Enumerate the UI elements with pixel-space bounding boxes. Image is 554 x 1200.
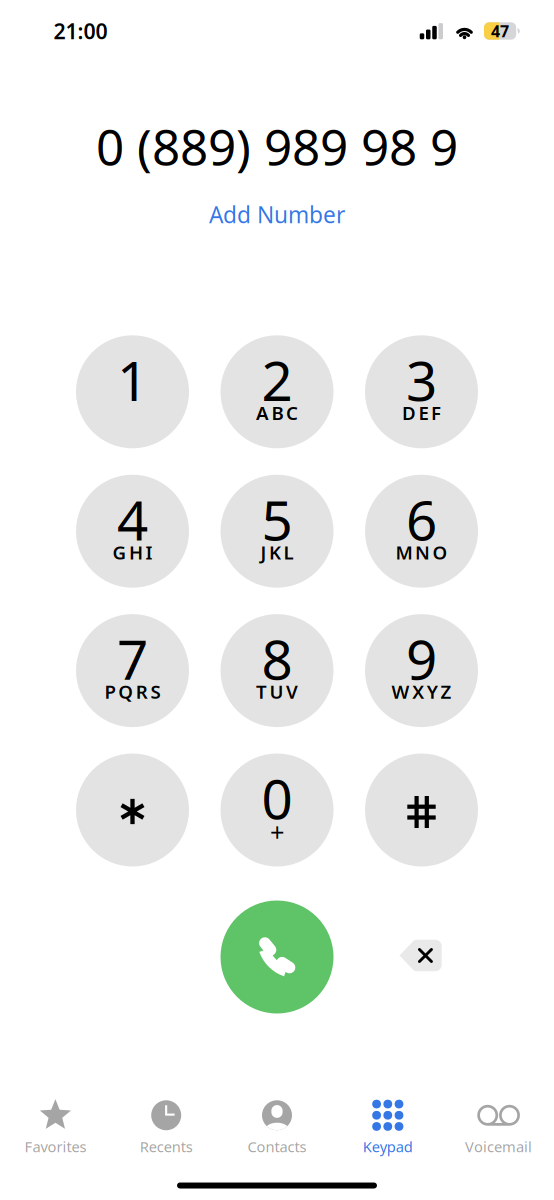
staticText: 3 [406, 343, 437, 416]
button[interactable]: Call [220, 900, 333, 1013]
button[interactable]: 5 [220, 475, 333, 588]
button[interactable] [76, 753, 189, 866]
staticText: PQRS [105, 679, 160, 704]
staticText: MNO [395, 540, 448, 565]
staticText: 8 [261, 622, 292, 695]
button[interactable]: Favorites [0, 1089, 111, 1161]
staticText: GHI [112, 540, 153, 565]
staticText: Favorites [24, 1137, 86, 1156]
button[interactable] [365, 753, 478, 866]
staticText: 5 [261, 483, 292, 555]
button[interactable]: Delete [387, 927, 453, 983]
staticText: ABC [256, 400, 298, 425]
staticText: Add Number [209, 199, 345, 229]
button[interactable]: Contacts [222, 1089, 332, 1161]
button[interactable]: Recents [111, 1089, 222, 1161]
button[interactable]: 6 [365, 475, 478, 588]
button[interactable]: 4 [76, 475, 189, 588]
button[interactable]: 3 [365, 335, 478, 448]
staticText: Keypad [363, 1137, 413, 1156]
staticText: TUV [256, 679, 298, 704]
staticText: 0 (889) 989 98 9 [96, 113, 458, 179]
staticText: 0 [261, 762, 292, 834]
button[interactable]: 7 [76, 614, 189, 727]
button[interactable]: 8 [220, 614, 333, 727]
button[interactable]: 1 [76, 335, 189, 448]
staticText: Voicemail [465, 1137, 532, 1156]
staticText: + [270, 815, 284, 849]
staticText: DEF [402, 400, 441, 425]
staticText: WXYZ [392, 679, 451, 704]
staticText: 6 [406, 483, 437, 555]
staticText: 47 [491, 20, 509, 42]
button[interactable]: Keypad [332, 1089, 443, 1161]
button[interactable]: 2 [220, 335, 333, 448]
staticText: JKL [260, 540, 294, 565]
button[interactable]: 9 [365, 614, 478, 727]
staticText: 7 [117, 622, 148, 695]
staticText: 9 [406, 622, 437, 695]
button[interactable]: 0 [220, 753, 333, 866]
button[interactable]: Add Number [199, 195, 355, 233]
staticText: Recents [140, 1137, 193, 1156]
staticText: 21:00 [53, 17, 107, 45]
staticText: 2 [261, 343, 292, 416]
staticText: Contacts [247, 1137, 306, 1156]
staticText: 1 [117, 343, 148, 416]
button[interactable]: Voicemail [443, 1089, 554, 1161]
staticText: 4 [117, 483, 148, 555]
